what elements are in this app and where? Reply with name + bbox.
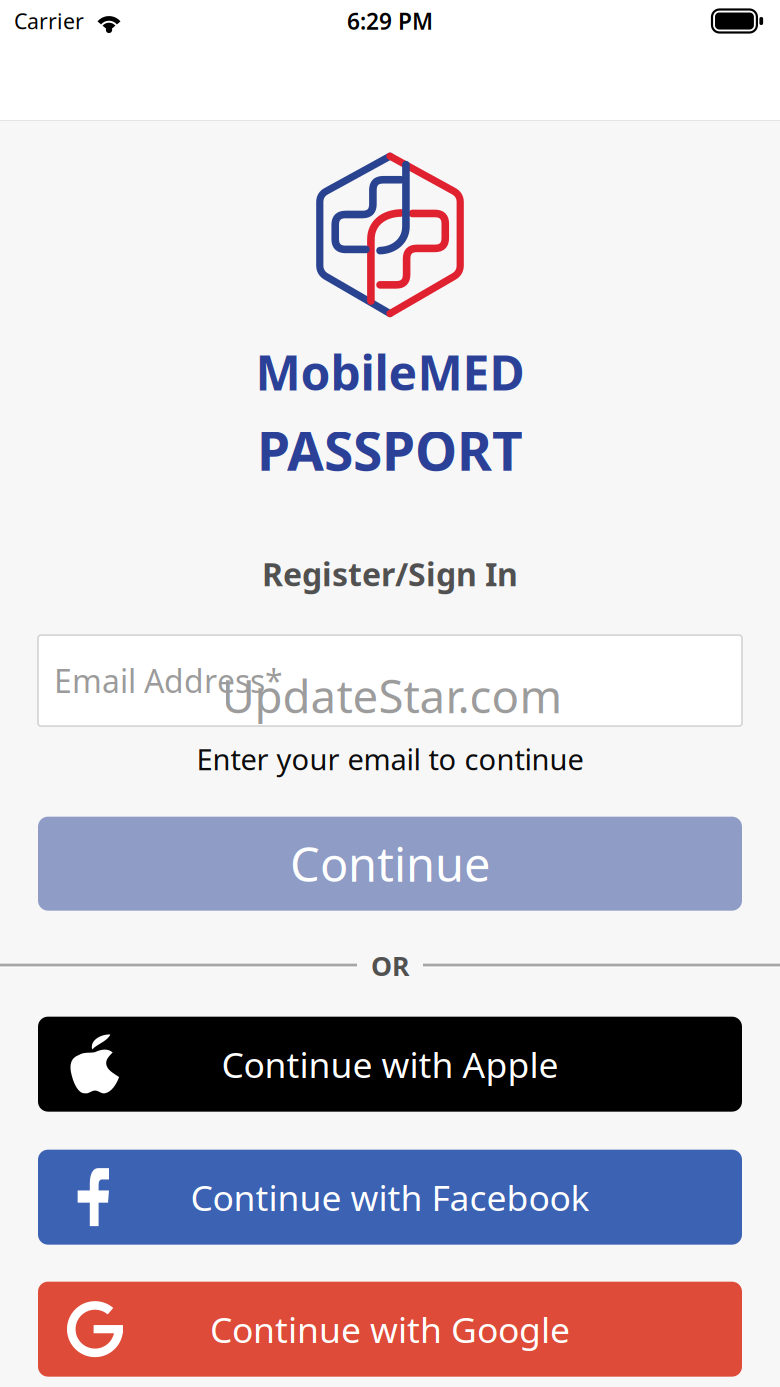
- staticText: Continue with Apple: [221, 1040, 558, 1088]
- button[interactable]: Continue with Facebook: [38, 1150, 742, 1245]
- staticText: Register/Sign In: [262, 553, 518, 595]
- staticText: Enter your email to continue: [196, 739, 583, 779]
- staticText: Continue with Facebook: [190, 1173, 589, 1221]
- staticText: Continue: [290, 832, 490, 896]
- staticText: UpdateStar.com: [221, 664, 562, 727]
- staticText: PASSPORT: [257, 415, 523, 485]
- staticText: Email Address*: [54, 659, 283, 702]
- staticText: OR: [371, 948, 409, 983]
- staticText: 6:29 PM: [347, 6, 433, 36]
- staticText: Carrier: [14, 7, 84, 35]
- button[interactable]: Continue with Apple: [38, 1017, 742, 1112]
- button[interactable]: Continue with Google: [38, 1282, 742, 1377]
- staticText: MobileMED: [255, 340, 524, 404]
- button[interactable]: Continue: [38, 817, 742, 911]
- staticText: Continue with Google: [210, 1305, 570, 1353]
